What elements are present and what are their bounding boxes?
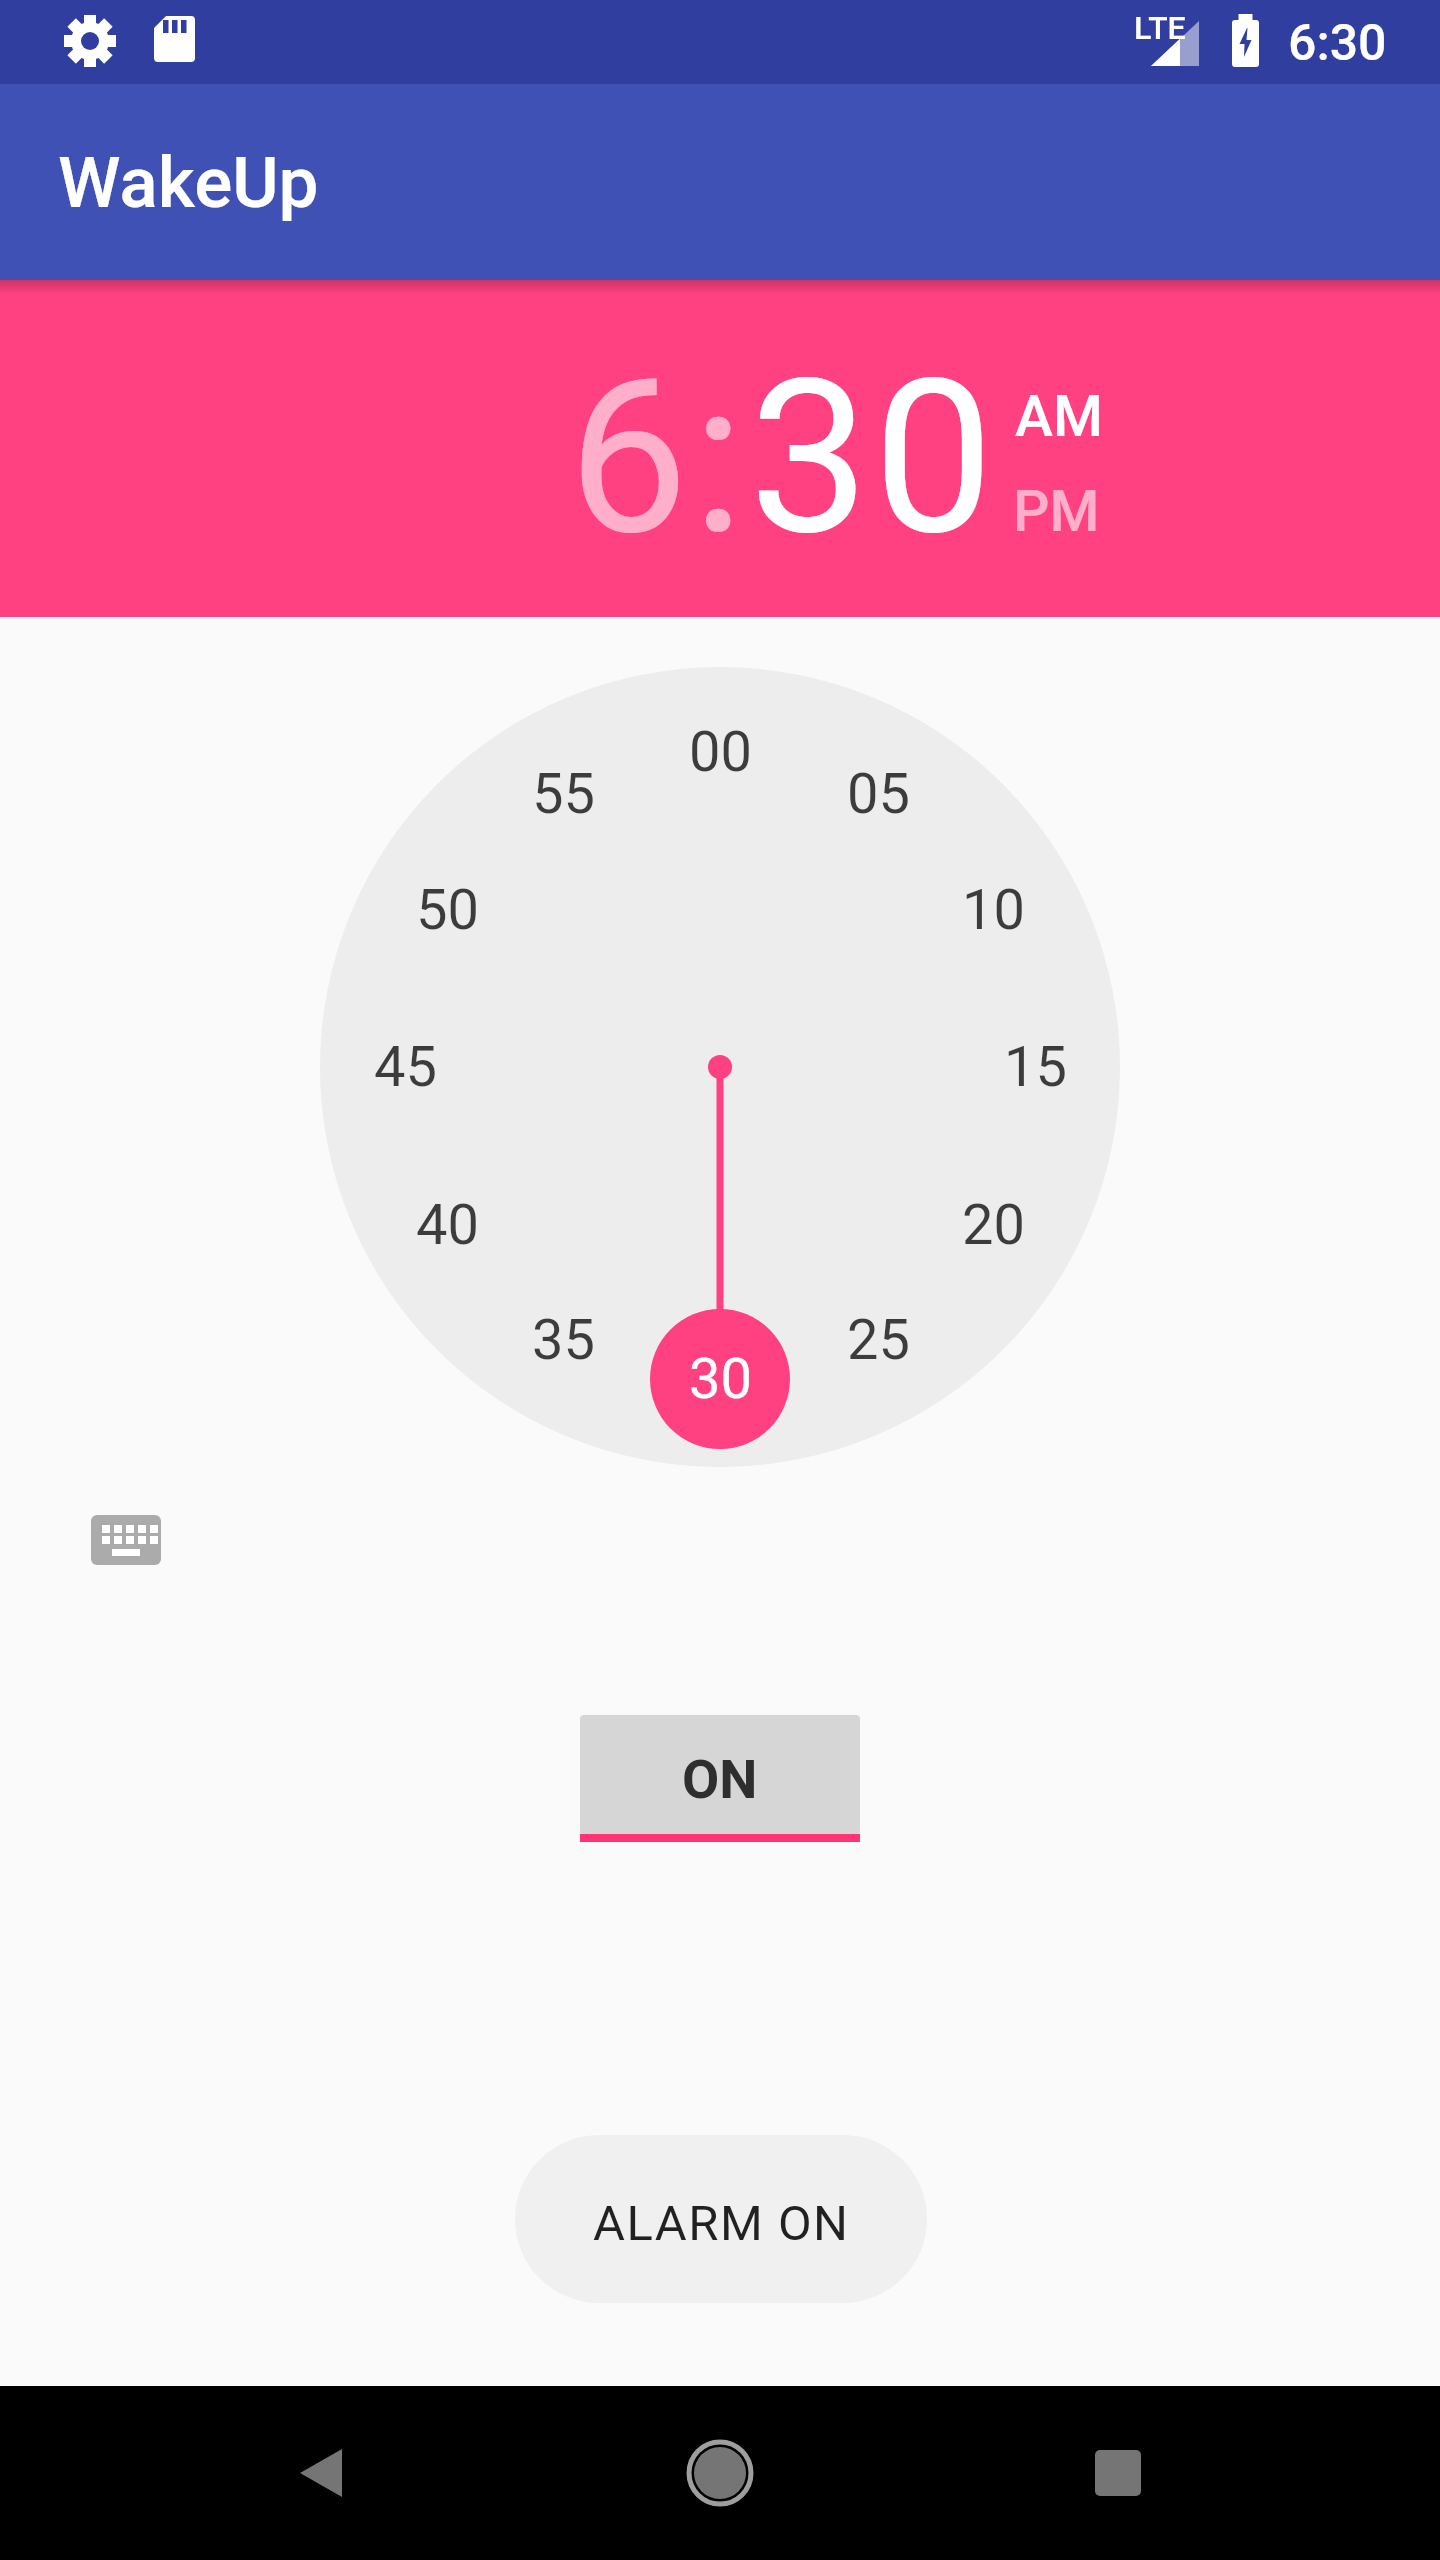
button[interactable] bbox=[670, 2423, 770, 2523]
button[interactable]: 40 bbox=[367, 1175, 527, 1275]
button[interactable]: PM bbox=[1013, 478, 1100, 545]
staticText: 20 bbox=[962, 1192, 1025, 1258]
staticText: LTE bbox=[1134, 9, 1186, 47]
button[interactable] bbox=[272, 2423, 372, 2523]
button[interactable]: 15 bbox=[955, 1017, 1115, 1117]
staticText: WakeUp bbox=[58, 141, 319, 224]
staticText: 50 bbox=[416, 877, 479, 943]
button[interactable]: ON bbox=[580, 1715, 860, 1842]
button[interactable]: 10 bbox=[913, 860, 1073, 960]
staticText: ON bbox=[682, 1748, 758, 1811]
staticText: 30 bbox=[689, 1346, 752, 1412]
button[interactable]: 05 bbox=[798, 744, 958, 844]
staticText: AM bbox=[1015, 383, 1103, 450]
button[interactable]: 50 bbox=[367, 860, 527, 960]
staticText: ALARM ON bbox=[593, 2195, 850, 2252]
staticText: PM bbox=[1013, 478, 1100, 545]
staticText: 40 bbox=[416, 1192, 479, 1258]
staticText: 35 bbox=[532, 1307, 595, 1373]
staticText: 10 bbox=[962, 877, 1025, 943]
staticText: 05 bbox=[847, 761, 910, 827]
button[interactable] bbox=[91, 1515, 161, 1565]
button[interactable]: 35 bbox=[483, 1290, 643, 1390]
staticText: 15 bbox=[1004, 1034, 1067, 1100]
staticText: 6: bbox=[568, 332, 749, 583]
staticText: 25 bbox=[847, 1307, 910, 1373]
staticText: 55 bbox=[532, 761, 595, 827]
button[interactable]: 30 bbox=[640, 1329, 800, 1429]
button[interactable]: 55 bbox=[483, 744, 643, 844]
button[interactable]: 20 bbox=[913, 1175, 1073, 1275]
staticText: 00 bbox=[689, 719, 752, 785]
button[interactable]: ALARM ON bbox=[515, 2135, 927, 2303]
button[interactable]: 00 bbox=[640, 702, 800, 802]
button[interactable]: 45 bbox=[325, 1017, 485, 1117]
staticText: 45 bbox=[374, 1034, 437, 1100]
staticText: 6:30 bbox=[1288, 14, 1387, 73]
button[interactable]: AM bbox=[1015, 383, 1103, 450]
staticText: 30 bbox=[749, 332, 998, 583]
button[interactable] bbox=[1068, 2423, 1168, 2523]
button[interactable]: 25 bbox=[798, 1290, 958, 1390]
